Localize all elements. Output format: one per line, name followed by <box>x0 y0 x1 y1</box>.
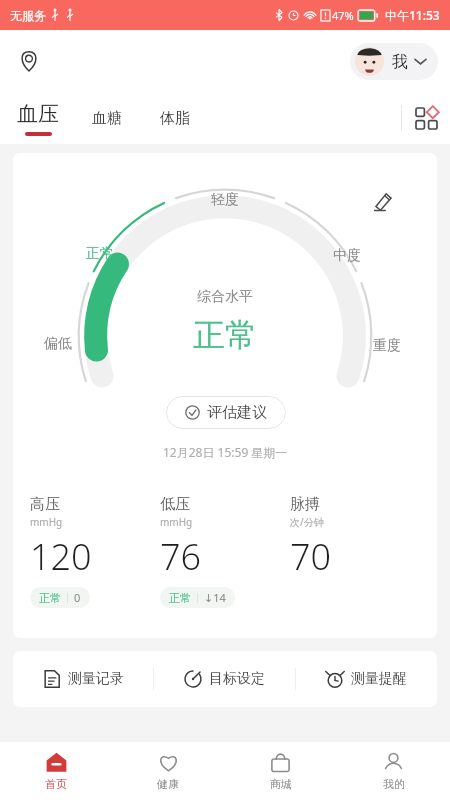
button[interactable]: Location <box>10 42 48 80</box>
staticText: 正常 <box>193 315 257 355</box>
staticText: 正常 <box>86 245 114 263</box>
staticText: 体脂 <box>160 109 190 128</box>
staticText: 正常 <box>39 591 61 605</box>
button[interactable]: Edit <box>365 183 401 219</box>
staticText: 脉搏 <box>290 495 320 514</box>
button[interactable]: 血压 <box>14 98 62 139</box>
button[interactable]: 我的 <box>337 745 450 798</box>
button[interactable]: 血糖 <box>88 100 126 137</box>
staticText: 轻度 <box>211 191 239 209</box>
staticText: 70 <box>290 532 332 581</box>
staticText: 我的 <box>383 777 405 791</box>
staticText: 中午11:53 <box>385 7 440 23</box>
staticText: 综合水平 <box>197 288 253 306</box>
staticText: 正常 <box>169 591 191 605</box>
staticText: 中度 <box>333 247 361 265</box>
button[interactable]: 评估建议 <box>166 396 286 429</box>
staticText: 76 <box>160 532 202 581</box>
staticText: 健康 <box>157 777 179 791</box>
button[interactable]: 健康 <box>112 745 224 798</box>
staticText: 首页 <box>45 777 67 791</box>
staticText: 低压 <box>160 495 190 514</box>
button[interactable]: More tools <box>402 94 450 142</box>
staticText: 12月28日 15:59 星期一 <box>163 444 288 460</box>
button[interactable]: 测量提醒 <box>296 656 437 702</box>
button[interactable]: 测量记录 <box>13 656 153 702</box>
staticText: 偏低 <box>44 335 72 353</box>
staticText: 目标设定 <box>209 670 265 688</box>
button[interactable]: 我 <box>350 43 438 80</box>
button[interactable]: 目标设定 <box>154 656 295 702</box>
staticText: 测量提醒 <box>351 670 407 688</box>
staticText: 无服务 <box>10 8 46 23</box>
button[interactable]: 体脂 <box>156 100 194 137</box>
staticText: 0 <box>74 590 81 605</box>
staticText: 高压 <box>30 495 60 514</box>
staticText: 血压 <box>17 101 59 127</box>
staticText: 重度 <box>373 337 401 355</box>
staticText: 评估建议 <box>207 403 267 422</box>
staticText: mmHg <box>30 515 63 529</box>
staticText: 商城 <box>270 777 292 791</box>
staticText: 血糖 <box>92 109 122 128</box>
button[interactable]: 商城 <box>224 745 337 798</box>
staticText: 我 <box>392 52 408 72</box>
staticText: 47% <box>332 8 354 23</box>
staticText: 120 <box>30 532 92 581</box>
button[interactable]: 首页 <box>0 745 112 798</box>
staticText: 次/分钟 <box>290 515 324 529</box>
staticText: ↓14 <box>204 590 226 605</box>
staticText: 测量记录 <box>68 670 124 688</box>
staticText: mmHg <box>160 515 193 529</box>
